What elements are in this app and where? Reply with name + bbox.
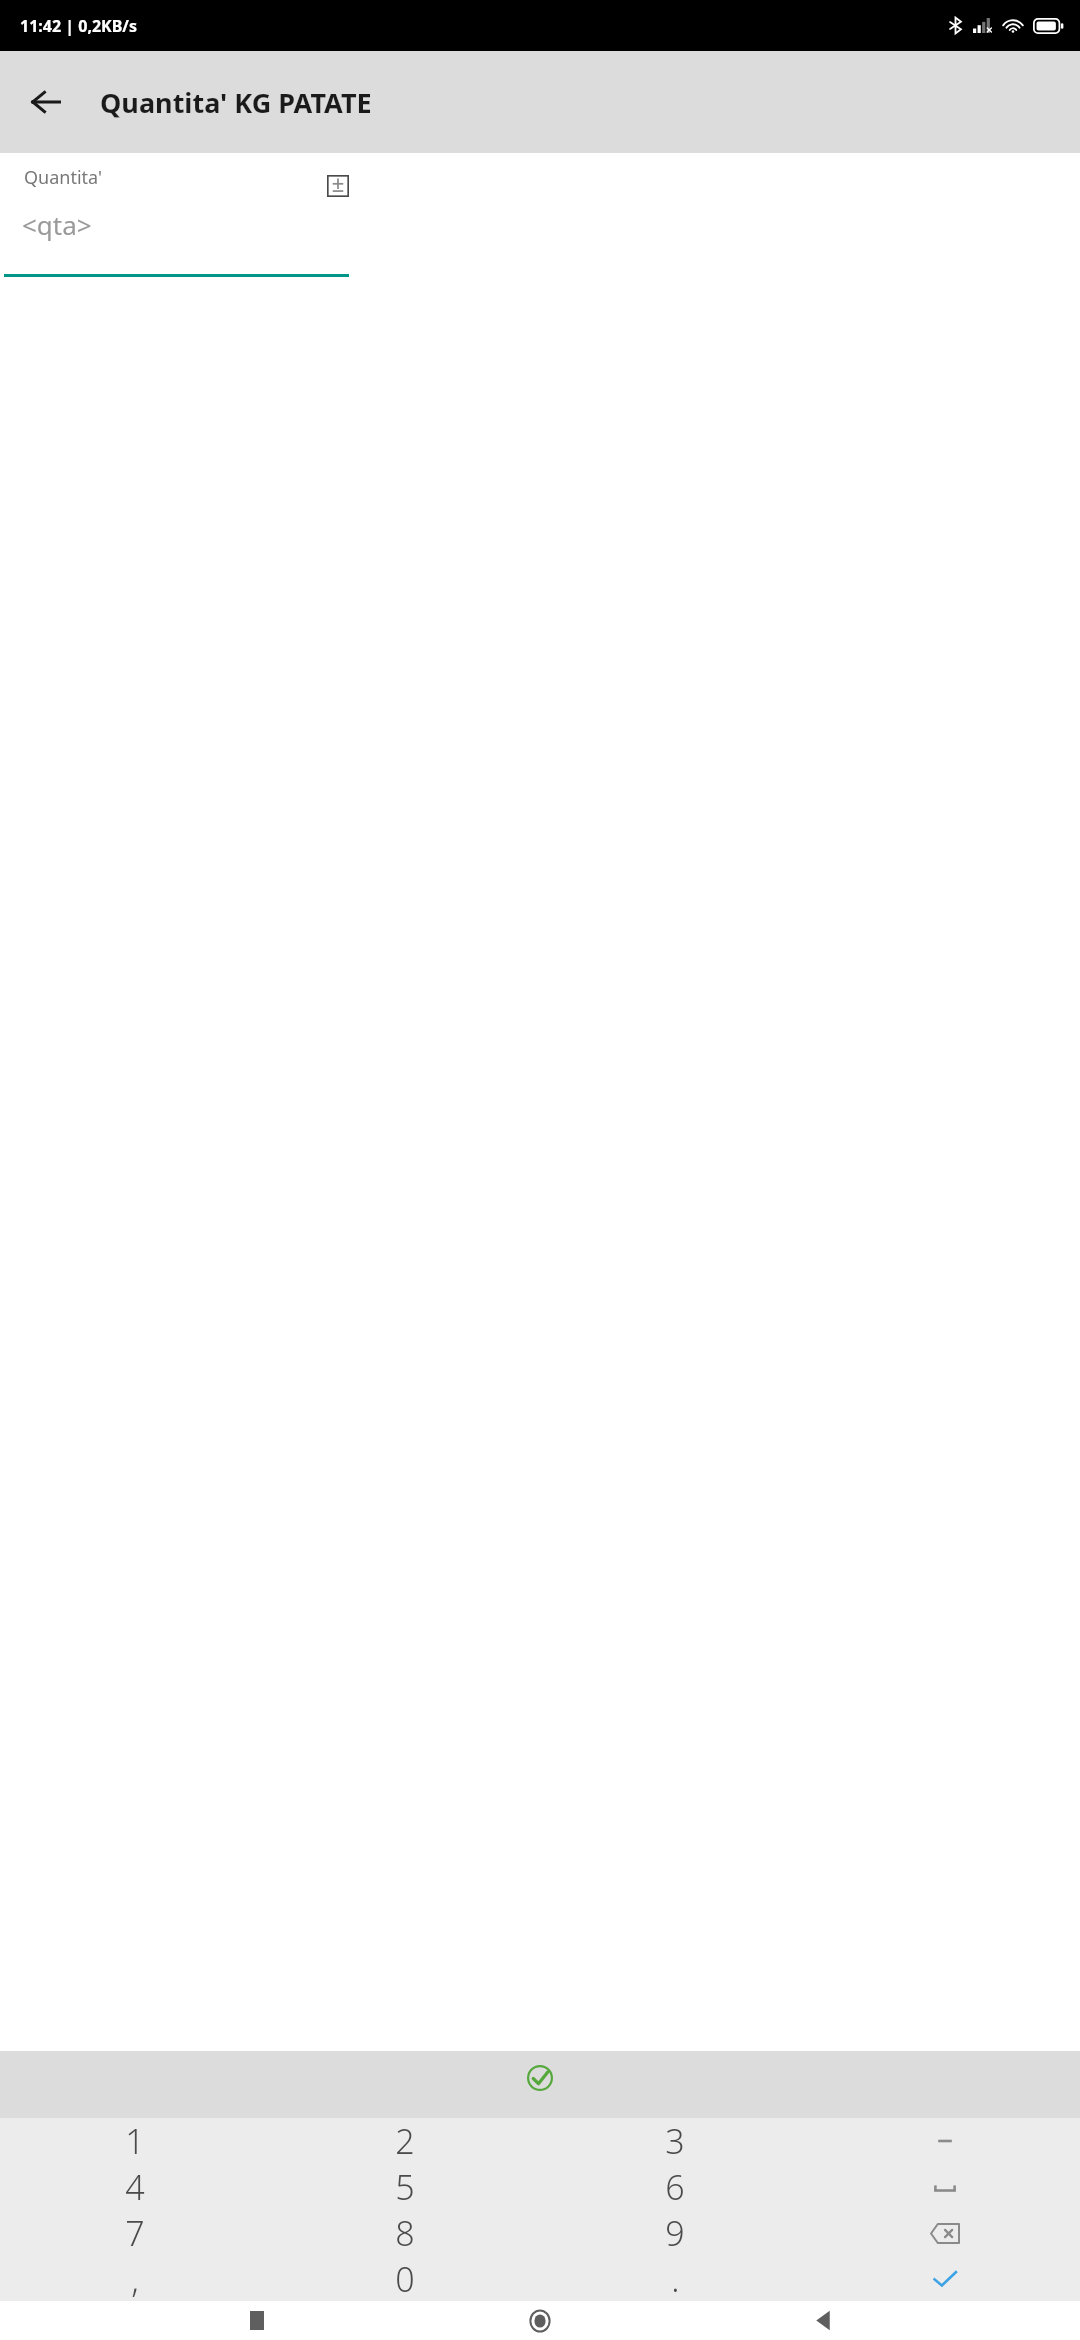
- staticText: 1: [125, 2118, 145, 2164]
- staticText: 2: [395, 2118, 415, 2164]
- button[interactable]: 9: [540, 2210, 810, 2256]
- staticText: 8: [395, 2210, 415, 2256]
- staticText: 3: [665, 2118, 685, 2164]
- staticText: <qta>: [22, 207, 92, 242]
- button[interactable]: .: [540, 2256, 810, 2301]
- button[interactable]: Minus: [810, 2118, 1080, 2164]
- button[interactable]: 1: [0, 2118, 270, 2164]
- staticText: 11:42 | 0,2KB/s: [20, 15, 138, 37]
- button[interactable]: 5: [270, 2164, 540, 2210]
- staticText: Quantita' KG PATATE: [100, 84, 372, 121]
- button[interactable]: Space: [810, 2164, 1080, 2210]
- staticText: ,: [131, 2256, 139, 2301]
- button[interactable]: Back: [797, 2301, 849, 2340]
- staticText: 9: [665, 2210, 685, 2256]
- button[interactable]: 0: [270, 2256, 540, 2301]
- staticText: 6: [665, 2164, 685, 2210]
- staticText: Quantita': [24, 165, 103, 190]
- staticText: 0: [395, 2256, 415, 2301]
- button[interactable]: Backspace: [810, 2210, 1080, 2256]
- staticText: 4: [125, 2164, 145, 2210]
- staticText: 7: [125, 2210, 145, 2256]
- button[interactable]: Increment or decrement quantity: [327, 175, 349, 197]
- button[interactable]: Back: [14, 70, 78, 134]
- button[interactable]: 6: [540, 2164, 810, 2210]
- button[interactable]: Enter: [810, 2256, 1080, 2301]
- staticText: .: [671, 2256, 680, 2301]
- button[interactable]: Home: [514, 2301, 566, 2340]
- button[interactable]: 7: [0, 2210, 270, 2256]
- button[interactable]: 8: [270, 2210, 540, 2256]
- button[interactable]: 4: [0, 2164, 270, 2210]
- button[interactable]: Recent apps: [231, 2301, 283, 2340]
- button[interactable]: Confirm: [515, 2053, 565, 2103]
- staticText: 5: [395, 2164, 415, 2210]
- button[interactable]: 2: [270, 2118, 540, 2164]
- button[interactable]: 3: [540, 2118, 810, 2164]
- button[interactable]: ,: [0, 2256, 270, 2301]
